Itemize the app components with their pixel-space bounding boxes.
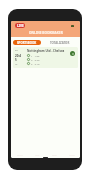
button[interactable]: SPORTSBOOK — [13, 40, 41, 45]
staticText: Fri — [15, 49, 18, 52]
button[interactable]: TOTALIZATOR — [41, 40, 78, 45]
staticText: X 3.40 — [31, 58, 40, 61]
staticText: 1 1.95 — [31, 54, 40, 57]
staticText: ID — [15, 63, 18, 66]
staticText: Nottingham Utd - Chelsea — [27, 49, 65, 53]
staticText: Sport — [17, 154, 23, 157]
staticText: 2 4.10 — [31, 62, 40, 65]
staticText: ONLINE BOOKMAKER — [29, 31, 63, 35]
staticText: Live — [35, 154, 40, 157]
button[interactable]: Account — [71, 25, 74, 27]
staticText: LIVE — [17, 24, 24, 28]
staticText: Bets — [52, 154, 57, 157]
button[interactable]: Bets — [46, 153, 63, 157]
button[interactable]: LIVE — [15, 23, 25, 28]
staticText: TOTALIZATOR — [50, 41, 70, 45]
button[interactable]: Live now — [70, 51, 75, 56]
staticText: SPORTSBOOK — [17, 41, 37, 45]
button[interactable]: Fri — [13, 47, 78, 68]
staticText: More — [69, 154, 75, 157]
staticText: 20:45 — [15, 54, 22, 62]
